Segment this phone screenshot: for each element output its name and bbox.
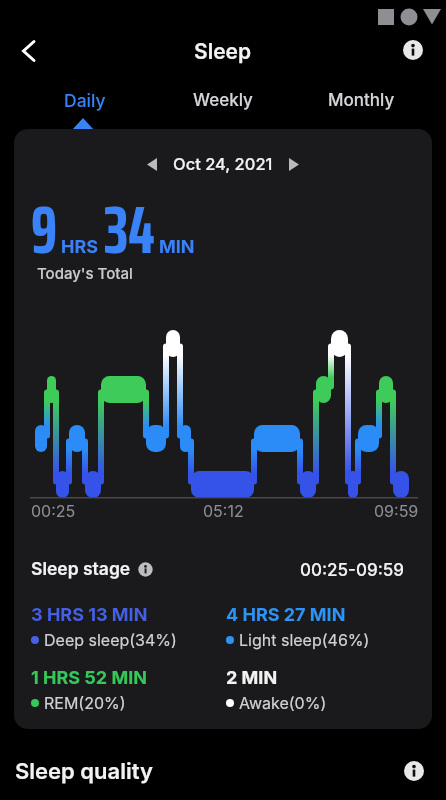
staticText: Sleep (194, 39, 252, 64)
staticText: Sleep stage (31, 558, 131, 579)
button[interactable] (12, 33, 48, 69)
staticText: Light sleep(46%) (239, 630, 370, 649)
button[interactable] (139, 150, 165, 178)
staticText: 2 MIN (226, 667, 278, 689)
button[interactable]: Monthly (292, 80, 430, 120)
staticText: 09:59 (374, 501, 419, 520)
staticText: 1 HRS 52 MIN (31, 667, 147, 689)
button[interactable]: Weekly (154, 80, 292, 120)
staticText: Deep sleep(34%) (44, 630, 177, 649)
staticText: 3 HRS 13 MIN (31, 604, 148, 626)
staticText: 4 HRS 27 MIN (226, 604, 346, 626)
staticText: 00:25-09:59 (300, 560, 405, 581)
staticText: REM(20%) (44, 693, 126, 712)
staticText: Sleep quality (15, 758, 153, 785)
staticText: Daily (64, 90, 106, 111)
staticText: 34 (104, 177, 155, 282)
staticText: Oct 24, 2021 (173, 154, 273, 174)
staticText: 9 (31, 177, 58, 282)
staticText: Awake(0%) (239, 693, 327, 712)
button[interactable] (395, 32, 431, 68)
staticText: 00:25 (31, 501, 76, 520)
button[interactable]: Daily (16, 80, 154, 120)
staticText: 05:12 (203, 501, 244, 520)
button[interactable] (281, 150, 307, 178)
button[interactable]: Sleep quality (0, 742, 446, 800)
staticText: Monthly (328, 90, 395, 111)
staticText: MIN (159, 236, 195, 258)
staticText: Today's Total (37, 264, 133, 282)
staticText: Weekly (193, 90, 253, 111)
staticText: HRS (61, 236, 99, 258)
